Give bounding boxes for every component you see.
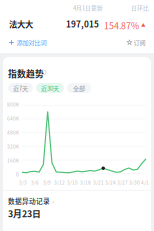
- staticText: 近7天: [13, 84, 28, 92]
- staticText: 4/1: [141, 179, 149, 186]
- button[interactable]: 订阅: [126, 36, 146, 49]
- staticText: 订阅: [133, 38, 145, 47]
- staticText: 4月1日更新: [73, 3, 103, 12]
- staticText: 3/15: [67, 179, 78, 186]
- staticText: 154.87%: [104, 19, 139, 32]
- staticText: 197,015: [66, 18, 99, 30]
- staticText: 指数趋势: [8, 67, 44, 80]
- staticText: 近30天: [41, 84, 59, 92]
- staticText: 3/6: [31, 179, 39, 186]
- button[interactable]: 全部: [67, 83, 91, 93]
- staticText: 数据异动记录: [8, 196, 50, 206]
- staticText: 480K: [7, 129, 19, 136]
- button[interactable]: 近7天: [8, 83, 33, 93]
- staticText: 3/9: [43, 179, 51, 186]
- staticText: 800K: [7, 101, 19, 108]
- staticText: 添加对比词: [16, 38, 46, 47]
- button[interactable]: 近30天: [36, 83, 64, 93]
- staticText: 法大大: [9, 18, 33, 30]
- staticText: 3月23日: [8, 207, 41, 220]
- staticText: 0: [16, 171, 19, 178]
- button[interactable]: 数据异动记录: [8, 194, 54, 208]
- staticText: ›: [52, 196, 54, 206]
- staticText: 3/12: [54, 179, 65, 186]
- button[interactable]: 添加对比词: [8, 36, 47, 49]
- staticText: 3/21: [93, 179, 104, 186]
- staticText: 3/30: [129, 179, 140, 186]
- staticText: 640K: [7, 115, 19, 122]
- staticText: ▲: [141, 21, 146, 28]
- staticText: 3/18: [80, 179, 91, 186]
- staticText: 3/3: [19, 179, 27, 186]
- staticText: 全部: [73, 84, 85, 92]
- staticText: 160K: [7, 157, 19, 164]
- staticText: 日环比: [131, 3, 149, 12]
- staticText: 3/27: [117, 179, 128, 186]
- staticText: 320K: [7, 143, 19, 150]
- staticText: 3/24: [105, 179, 116, 186]
